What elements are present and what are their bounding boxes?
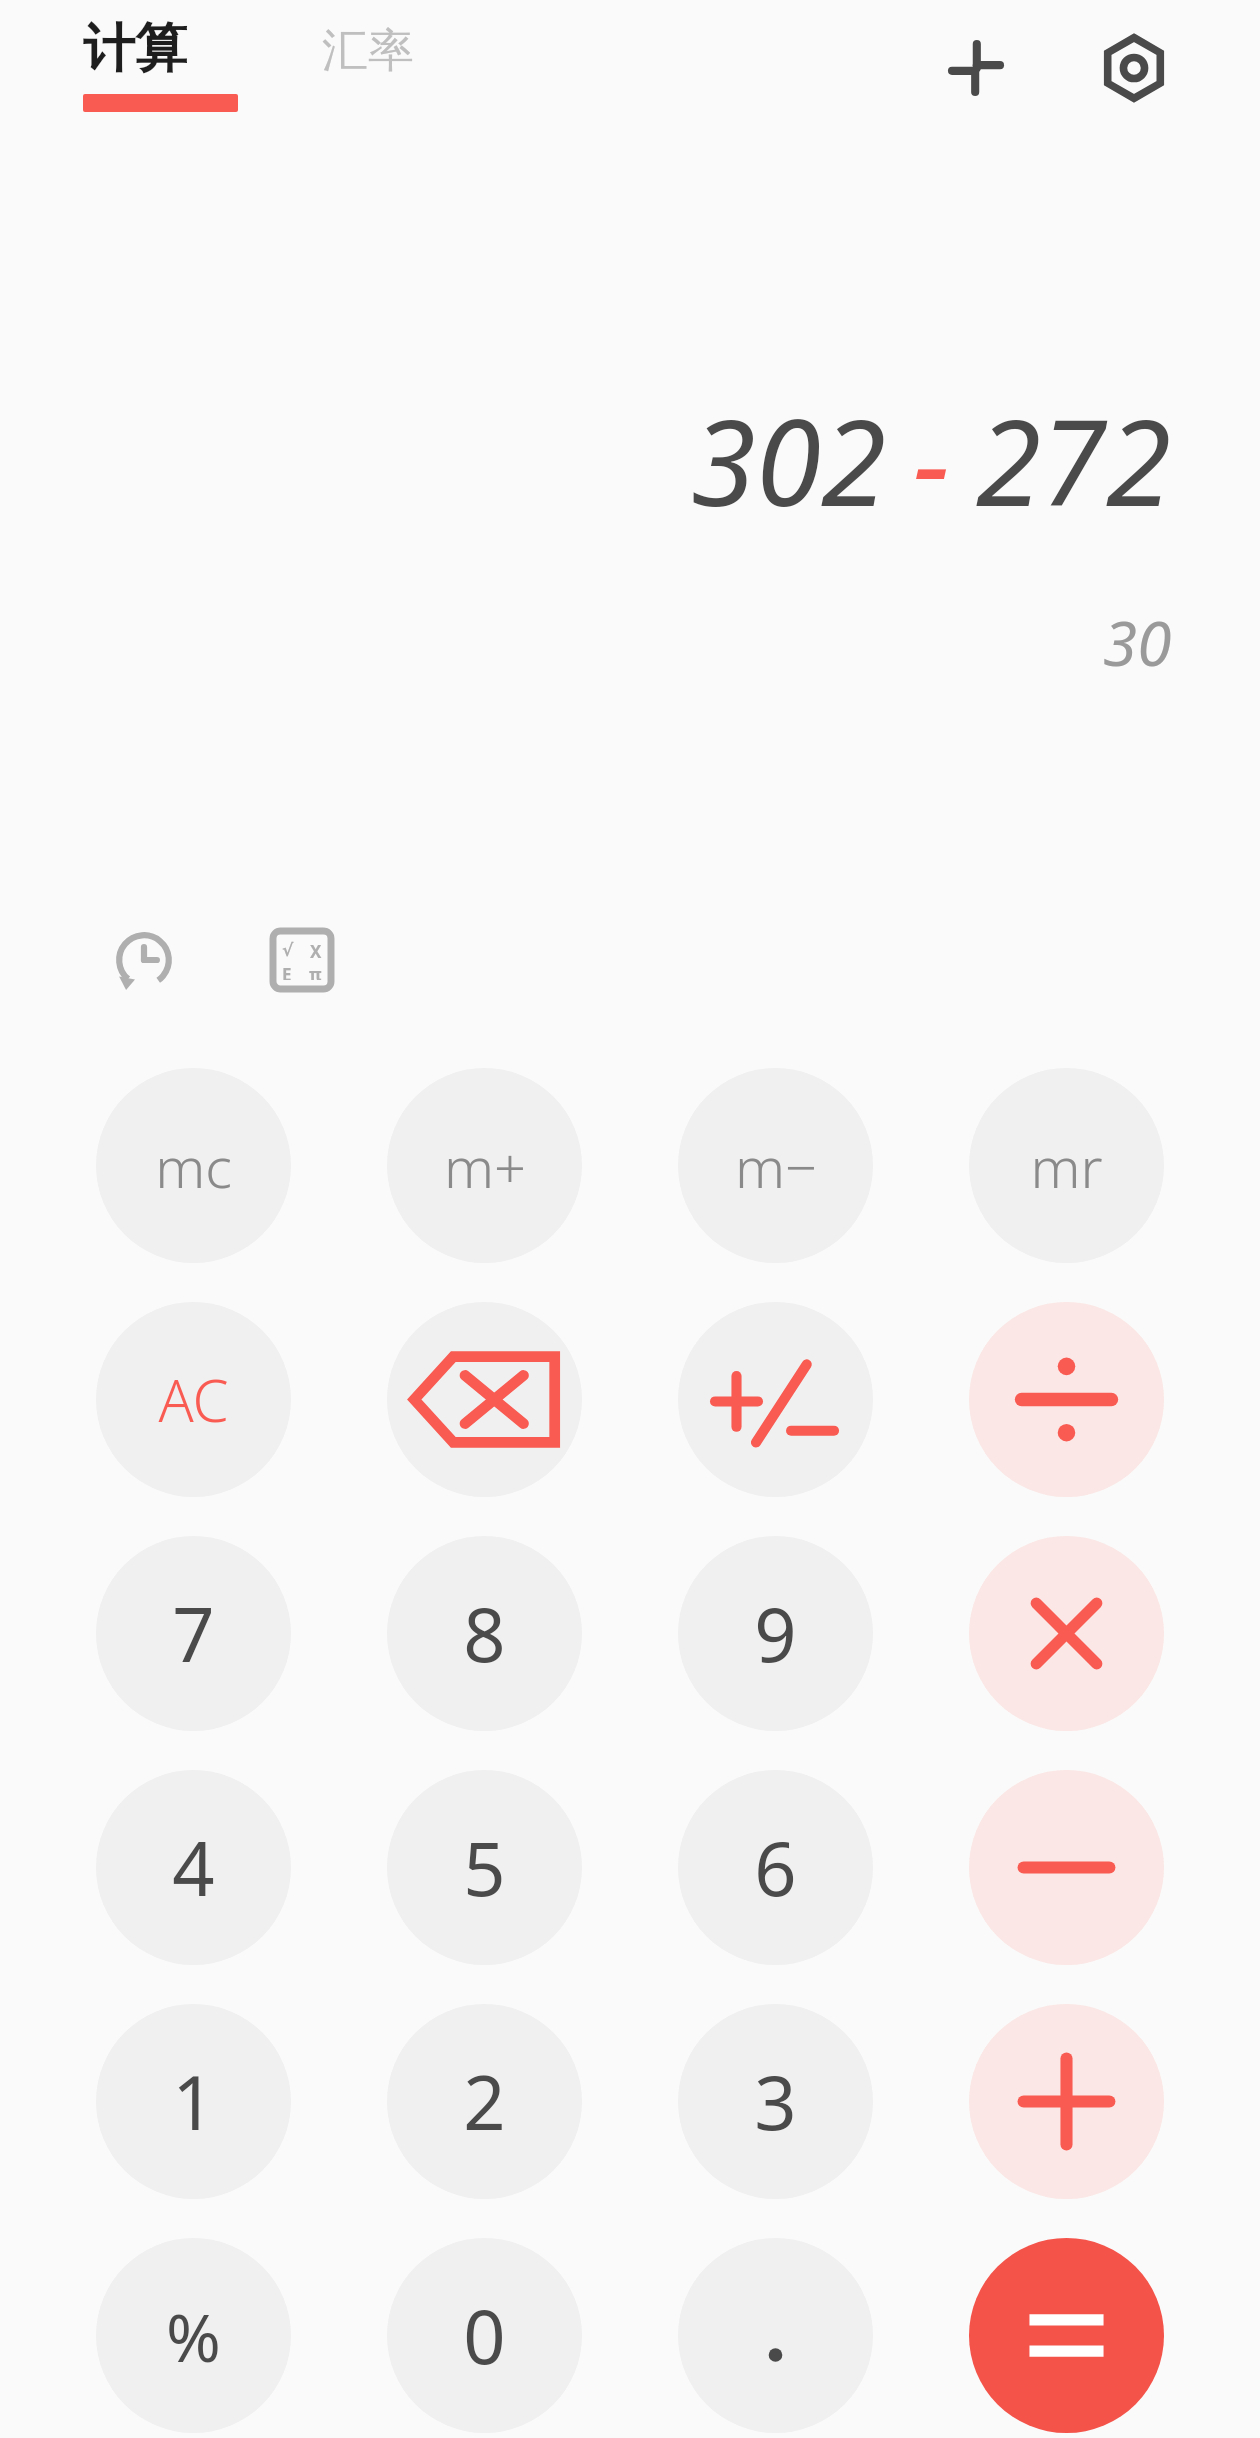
button[interactable]: m+ bbox=[387, 1068, 582, 1263]
staticText: 4 bbox=[172, 1817, 215, 1918]
button[interactable]: % bbox=[96, 2238, 291, 2433]
staticText: AC bbox=[158, 1360, 229, 1439]
button[interactable]: mr bbox=[969, 1068, 1164, 1263]
button[interactable]: Decimal point bbox=[678, 2238, 873, 2433]
staticText: 9 bbox=[754, 1583, 797, 1684]
button[interactable]: Equals bbox=[969, 2238, 1164, 2433]
button[interactable]: Divide bbox=[969, 1302, 1164, 1497]
button[interactable]: 5 bbox=[387, 1770, 582, 1965]
button[interactable]: 汇率 bbox=[318, 14, 468, 104]
staticText: π bbox=[309, 963, 322, 980]
button[interactable]: m− bbox=[678, 1068, 873, 1263]
button[interactable]: 计算 bbox=[78, 14, 246, 118]
staticText: 7 bbox=[172, 1583, 215, 1684]
button[interactable]: Minus bbox=[969, 1770, 1164, 1965]
staticText: % bbox=[166, 2291, 221, 2381]
button[interactable]: mc bbox=[96, 1068, 291, 1263]
staticText: m− bbox=[735, 1128, 817, 1204]
staticText: 2 bbox=[463, 2051, 506, 2152]
button[interactable]: 3 bbox=[678, 2004, 873, 2199]
button[interactable]: Plus bbox=[969, 2004, 1164, 2199]
button[interactable]: 8 bbox=[387, 1536, 582, 1731]
staticText: 6 bbox=[754, 1817, 797, 1918]
button[interactable]: 9 bbox=[678, 1536, 873, 1731]
staticText: - bbox=[913, 380, 950, 541]
staticText: 8 bbox=[463, 1583, 506, 1684]
button[interactable]: History bbox=[96, 912, 192, 1008]
staticText: mr bbox=[1030, 1128, 1103, 1204]
staticText: 302 bbox=[691, 380, 887, 541]
staticText: 计算 bbox=[83, 16, 187, 82]
button[interactable]: Expand bbox=[930, 22, 1022, 114]
staticText: X bbox=[310, 940, 322, 963]
staticText: 汇率 bbox=[322, 22, 414, 80]
staticText: √ bbox=[282, 940, 294, 960]
staticText: mc bbox=[155, 1128, 232, 1204]
staticText: 1 bbox=[172, 2051, 215, 2152]
staticText: 272 bbox=[976, 380, 1172, 541]
staticText: 0 bbox=[463, 2285, 506, 2386]
button[interactable]: 4 bbox=[96, 1770, 291, 1965]
staticText: 5 bbox=[463, 1817, 506, 1918]
button[interactable]: 7 bbox=[96, 1536, 291, 1731]
staticText: 3 bbox=[754, 2051, 797, 2152]
button[interactable]: Scientific bbox=[254, 912, 350, 1008]
staticText: m+ bbox=[444, 1128, 526, 1204]
button[interactable]: 1 bbox=[96, 2004, 291, 2199]
button[interactable]: 0 bbox=[387, 2238, 582, 2433]
button[interactable]: Multiply bbox=[969, 1536, 1164, 1731]
button[interactable]: Backspace bbox=[387, 1302, 582, 1497]
staticText: E bbox=[282, 963, 292, 980]
button[interactable]: 2 bbox=[387, 2004, 582, 2199]
button[interactable]: AC bbox=[96, 1302, 291, 1497]
button[interactable]: 6 bbox=[678, 1770, 873, 1965]
staticText: 30 bbox=[1103, 600, 1172, 684]
button[interactable]: Settings bbox=[1088, 22, 1180, 114]
button[interactable]: Plus minus bbox=[678, 1302, 873, 1497]
